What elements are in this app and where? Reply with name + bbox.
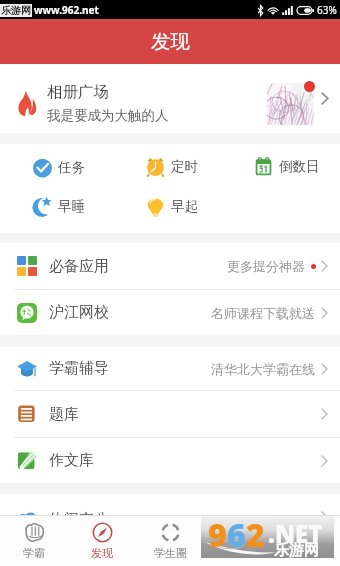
staticText: 沪江网校 xyxy=(49,303,109,322)
button[interactable]: 消息 xyxy=(204,515,272,566)
button[interactable]: 早起 xyxy=(145,193,198,219)
staticText: 定时 xyxy=(171,158,198,175)
staticText: 学霸辅导 xyxy=(49,359,109,378)
staticText: 我的 xyxy=(295,546,317,560)
button[interactable]: 发现 xyxy=(68,515,136,566)
staticText: 发现 xyxy=(91,546,113,560)
staticText: 相册广场 xyxy=(47,82,109,102)
button[interactable]: 任务 xyxy=(32,154,85,180)
staticText: 必备应用 xyxy=(49,257,109,276)
staticText: 2 xyxy=(246,513,265,555)
button[interactable]: 学霸 xyxy=(0,515,68,566)
button[interactable]: 作文库 xyxy=(0,438,340,483)
button[interactable]: 倒数日 xyxy=(253,153,320,179)
button[interactable]: 休闲充八 xyxy=(0,494,340,515)
staticText: 乐游网 xyxy=(274,541,319,560)
staticText: 乐游网 xyxy=(1,4,31,17)
staticText: 名师课程下载就送 xyxy=(211,305,315,321)
staticText: 休闲充八 xyxy=(49,510,109,529)
staticText: 学霸 xyxy=(23,546,45,560)
button[interactable]: 必备应用 xyxy=(0,243,340,289)
staticText: 6 xyxy=(227,513,246,555)
staticText: 题库 xyxy=(49,405,79,424)
staticText: 任务 xyxy=(58,159,85,176)
staticText: 消息 xyxy=(227,546,249,560)
staticText: 9 xyxy=(208,513,227,555)
staticText: www.962.net xyxy=(34,3,99,17)
button[interactable]: 题库 xyxy=(0,391,340,437)
staticText: 我是要成为大触的人 xyxy=(47,107,169,124)
staticText: 发现 xyxy=(151,29,190,54)
staticText: 更多提分神器 xyxy=(227,258,305,274)
staticText: 早起 xyxy=(171,198,198,215)
staticText: 早睡 xyxy=(58,198,85,215)
staticText: 63% xyxy=(317,3,337,17)
button[interactable]: 学霸辅导 xyxy=(0,347,340,390)
button[interactable]: 定时 xyxy=(145,153,198,179)
button[interactable]: 我的 xyxy=(272,515,340,566)
button[interactable]: 早睡 xyxy=(32,193,85,219)
staticText: 清华北大学霸在线 xyxy=(211,361,315,377)
staticText: 学生圈 xyxy=(154,546,187,560)
staticText: .NET xyxy=(268,517,323,550)
staticText: 作文库 xyxy=(49,451,94,470)
button[interactable]: 学生圈 xyxy=(136,515,204,566)
staticText: 倒数日 xyxy=(279,158,320,175)
button[interactable]: 相册广场 xyxy=(0,64,340,133)
button[interactable]: 沪江网校 xyxy=(0,290,340,335)
